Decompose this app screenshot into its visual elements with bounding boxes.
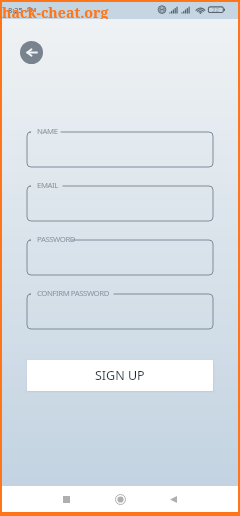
button[interactable]: Back (160, 486, 186, 512)
staticText: PM (27, 6, 37, 14)
staticText: CONFIRM PASSWORD (37, 288, 109, 299)
staticText: PASSWORD (37, 234, 76, 245)
staticText: 8:25 (8, 5, 23, 15)
staticText: SIGN UP (95, 367, 145, 384)
button[interactable]: Home (107, 486, 133, 512)
button[interactable]: SIGN UP (27, 360, 213, 391)
staticText: EMAIL (37, 180, 58, 191)
button[interactable]: Recents (53, 486, 79, 512)
button[interactable]: Back (20, 41, 43, 64)
staticText: NAME (37, 126, 58, 137)
staticText: hack-cheat.org (2, 3, 109, 20)
staticText: 22 (212, 6, 219, 14)
